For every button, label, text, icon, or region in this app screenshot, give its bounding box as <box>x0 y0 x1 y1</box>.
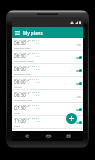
staticText: PM <box>26 105 29 108</box>
staticText: PM <box>26 118 29 121</box>
staticText: MO <box>14 39 18 42</box>
staticText: SA <box>36 104 37 110</box>
staticText: MO <box>14 91 18 94</box>
staticText: 08:00 <box>14 66 26 72</box>
staticText: WE <box>23 52 27 55</box>
staticText: TH <box>28 117 31 120</box>
button[interactable]: MO <box>12 38 83 51</box>
staticText: PM <box>26 92 29 95</box>
button[interactable]: Toggle alarm <box>75 92 82 101</box>
staticText: TH <box>28 104 31 107</box>
staticText: 11:00 <box>14 118 26 124</box>
staticText: FR <box>32 78 35 81</box>
staticText: SA <box>36 39 37 45</box>
staticText: My plans <box>23 30 43 36</box>
staticText: Meditation time <box>14 98 32 101</box>
staticText: Study <box>14 111 21 114</box>
staticText: WE <box>23 117 27 120</box>
staticText: Take your time <box>14 46 31 49</box>
staticText: SA <box>36 117 37 123</box>
button[interactable]: Toggle alarm <box>75 66 82 75</box>
staticText: PM <box>26 79 29 82</box>
button[interactable]: MO <box>12 64 83 77</box>
staticText: WE <box>23 78 27 81</box>
staticText: FR <box>32 91 35 94</box>
staticText: TU <box>19 39 22 42</box>
button[interactable]: MO <box>12 103 83 116</box>
button[interactable]: MO <box>12 116 83 129</box>
staticText: TU <box>19 91 22 94</box>
staticText: Sleep <box>14 124 21 127</box>
button[interactable]: MO <box>12 77 83 90</box>
staticText: WE <box>23 91 27 94</box>
staticText: TH <box>28 52 31 55</box>
button[interactable]: Toggle alarm <box>75 105 82 114</box>
staticText: MO <box>14 117 18 120</box>
staticText: TU <box>19 78 22 81</box>
staticText: FR <box>32 117 35 120</box>
staticText: AM <box>26 66 29 69</box>
staticText: SA <box>36 91 37 97</box>
staticText: AM <box>26 40 29 43</box>
staticText: MO <box>14 52 18 55</box>
staticText: SA <box>36 52 37 58</box>
button[interactable]: Recents <box>62 131 74 141</box>
button[interactable]: MO <box>12 51 83 64</box>
button[interactable]: Toggle alarm <box>75 118 82 127</box>
staticText: TU <box>19 117 22 120</box>
staticText: FR <box>32 39 35 42</box>
staticText: 08:00 <box>14 79 26 85</box>
staticText: Get ready to work <box>14 59 35 62</box>
staticText: FR <box>32 65 35 68</box>
staticText: SA <box>36 65 37 71</box>
staticText: WE <box>23 65 27 68</box>
button[interactable]: Home <box>42 131 54 141</box>
staticText: FR <box>32 104 35 107</box>
staticText: Breakfast time <box>14 72 31 75</box>
staticText: WE <box>23 104 27 107</box>
staticText: TH <box>28 91 31 94</box>
staticText: 06:30 <box>14 40 26 46</box>
staticText: MO <box>14 78 18 81</box>
staticText: TH <box>28 65 31 68</box>
staticText: 06:30 <box>14 53 26 59</box>
staticText: 07:30 <box>14 105 26 111</box>
button[interactable]: MO <box>12 90 83 103</box>
staticText: TU <box>19 52 22 55</box>
button[interactable]: Toggle alarm <box>75 53 82 62</box>
staticText: MO <box>14 104 18 107</box>
button[interactable]: Toggle alarm <box>75 40 82 49</box>
button[interactable]: Menu <box>12 27 23 38</box>
staticText: SA <box>36 78 37 84</box>
button[interactable]: Toggle alarm <box>75 79 82 88</box>
staticText: TH <box>28 39 31 42</box>
staticText: TU <box>19 104 22 107</box>
staticText: TU <box>19 65 22 68</box>
button[interactable]: Back <box>21 131 33 141</box>
staticText: Dinner <box>14 85 22 88</box>
staticText: TH <box>28 78 31 81</box>
button[interactable]: Add plan <box>66 113 77 124</box>
staticText: MO <box>14 65 18 68</box>
staticText: FR <box>32 52 35 55</box>
staticText: 06:30 <box>14 92 26 98</box>
staticText: AM <box>26 53 29 56</box>
staticText: WE <box>23 39 27 42</box>
